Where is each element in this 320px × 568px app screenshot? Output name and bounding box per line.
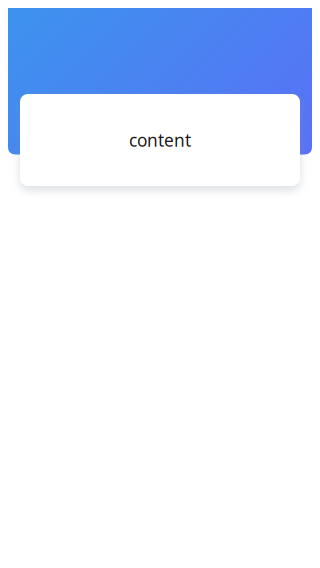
- staticText: content: [129, 128, 191, 151]
- button[interactable]: content: [20, 94, 300, 186]
